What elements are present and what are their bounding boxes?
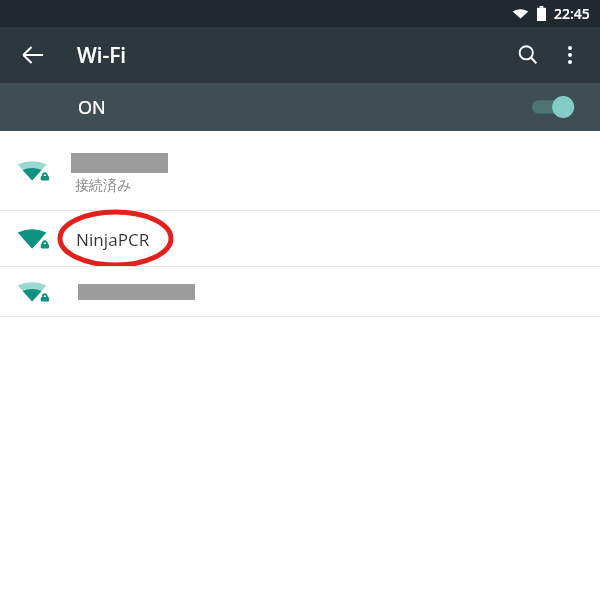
staticText: 接続済み: [75, 177, 132, 195]
button[interactable]: ON: [0, 83, 600, 131]
staticText: 22:45: [554, 4, 590, 23]
button[interactable]: [0, 267, 600, 317]
button[interactable]: More options: [546, 31, 594, 79]
staticText: ON: [78, 95, 106, 120]
staticText: NinjaPCR: [76, 228, 150, 251]
staticText: Wi-Fi: [77, 41, 126, 70]
button[interactable]: NinjaPCR: [0, 211, 600, 267]
button[interactable]: Back: [9, 31, 57, 79]
button[interactable]: 接続済み: [0, 131, 600, 211]
button[interactable]: Search: [504, 31, 552, 79]
